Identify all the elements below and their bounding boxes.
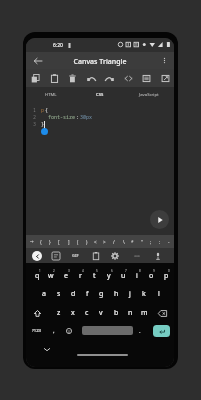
staticText: g bbox=[99, 289, 104, 299]
button[interactable]: v bbox=[94, 304, 108, 322]
button[interactable]: Emoji bbox=[63, 322, 75, 340]
button[interactable]: r bbox=[73, 267, 87, 285]
button[interactable]: u bbox=[116, 267, 130, 285]
button[interactable]: y bbox=[102, 267, 116, 285]
staticText: 8 bbox=[139, 269, 141, 273]
button[interactable]: b bbox=[109, 304, 123, 322]
staticText: a bbox=[42, 289, 46, 299]
button[interactable]: : bbox=[155, 235, 164, 248]
button[interactable]: Voice input bbox=[154, 252, 162, 260]
button[interactable]: CSS bbox=[75, 87, 124, 103]
button[interactable]: Clipboard bbox=[92, 252, 100, 260]
staticText: [ bbox=[58, 239, 60, 245]
button[interactable]: Space bbox=[82, 326, 133, 335]
staticText: k bbox=[142, 289, 146, 299]
button[interactable]: Backspace bbox=[155, 304, 169, 322]
staticText: q bbox=[35, 271, 40, 281]
staticText: font-size bbox=[48, 114, 76, 121]
button[interactable]: Hide keyboard bbox=[41, 343, 53, 355]
button[interactable]: Preview bbox=[137, 69, 155, 87]
staticText: { bbox=[45, 107, 49, 114]
button[interactable]: Keyboard settings bbox=[111, 252, 119, 260]
button[interactable]: \ bbox=[119, 235, 128, 248]
button[interactable]: " bbox=[137, 235, 146, 248]
button[interactable]: . bbox=[134, 322, 146, 340]
button[interactable]: n bbox=[123, 304, 137, 322]
button[interactable]: , bbox=[48, 322, 60, 340]
button[interactable]: Close toolbar bbox=[32, 251, 42, 261]
button[interactable]: Paste bbox=[45, 69, 63, 87]
button[interactable]: w bbox=[44, 267, 58, 285]
button[interactable]: i bbox=[130, 267, 144, 285]
button[interactable]: x bbox=[66, 304, 80, 322]
button[interactable]: Stickers bbox=[52, 252, 60, 260]
staticText: 3 bbox=[68, 269, 70, 273]
button[interactable]: More options bbox=[160, 56, 169, 65]
button[interactable]: More options bbox=[133, 252, 141, 260]
button[interactable]: HTML bbox=[26, 87, 75, 103]
button[interactable]: Enter bbox=[153, 325, 170, 337]
button[interactable]: ) bbox=[82, 235, 91, 248]
button[interactable]: k bbox=[137, 285, 151, 303]
staticText: < bbox=[94, 239, 97, 245]
button[interactable]: m bbox=[137, 304, 151, 322]
button[interactable]: g bbox=[94, 285, 108, 303]
staticText: Canvas Triangle bbox=[26, 57, 174, 67]
button[interactable]: Back bbox=[33, 56, 43, 66]
staticText: : bbox=[76, 114, 80, 121]
staticText: s bbox=[57, 289, 61, 299]
button[interactable]: q bbox=[30, 267, 44, 285]
button[interactable]: Undo bbox=[82, 69, 100, 87]
staticText: 1 bbox=[39, 269, 41, 273]
button[interactable]: o bbox=[144, 267, 158, 285]
staticText: 30px bbox=[80, 114, 93, 121]
button[interactable]: [ bbox=[54, 235, 63, 248]
button[interactable]: } bbox=[45, 235, 54, 248]
staticText: z bbox=[57, 308, 61, 318]
staticText: } bbox=[41, 121, 45, 128]
button[interactable]: JavaScript bbox=[124, 87, 173, 103]
button[interactable]: h bbox=[109, 285, 123, 303]
staticText: > bbox=[103, 239, 106, 245]
button[interactable]: → bbox=[27, 235, 36, 248]
staticText: CSS bbox=[96, 92, 104, 98]
button[interactable]: l bbox=[152, 285, 166, 303]
button[interactable]: - bbox=[164, 235, 173, 248]
staticText: w bbox=[48, 271, 54, 281]
button[interactable]: f bbox=[80, 285, 94, 303]
button[interactable]: > bbox=[100, 235, 109, 248]
button[interactable]: / bbox=[109, 235, 118, 248]
staticText: p bbox=[164, 271, 169, 281]
button[interactable]: GIF bbox=[72, 253, 79, 258]
staticText: 6 bbox=[111, 269, 113, 273]
button[interactable]: Open in browser bbox=[156, 69, 174, 87]
button[interactable]: p bbox=[159, 267, 173, 285]
button[interactable]: j bbox=[123, 285, 137, 303]
staticText: e bbox=[64, 271, 68, 281]
staticText: : bbox=[159, 239, 161, 245]
staticText: \ bbox=[123, 239, 125, 245]
button[interactable]: d bbox=[66, 285, 80, 303]
staticText: r bbox=[79, 271, 82, 281]
button[interactable]: ; bbox=[146, 235, 155, 248]
staticText: . bbox=[139, 327, 141, 335]
button[interactable]: * bbox=[128, 235, 137, 248]
button[interactable]: < bbox=[91, 235, 100, 248]
button[interactable]: e bbox=[59, 267, 73, 285]
button[interactable]: ] bbox=[64, 235, 73, 248]
button[interactable]: a bbox=[37, 285, 51, 303]
button[interactable]: t bbox=[87, 267, 101, 285]
button[interactable]: ( bbox=[73, 235, 82, 248]
button[interactable]: c bbox=[80, 304, 94, 322]
button[interactable]: ?123 bbox=[28, 322, 46, 340]
button[interactable]: { bbox=[36, 235, 45, 248]
staticText: o bbox=[149, 271, 154, 281]
button[interactable]: Shift bbox=[30, 304, 44, 322]
button[interactable]: Run bbox=[150, 210, 169, 229]
button[interactable]: Cut bbox=[63, 69, 81, 87]
button[interactable]: s bbox=[52, 285, 66, 303]
button[interactable]: Copy bbox=[26, 69, 44, 87]
button[interactable]: Code view bbox=[119, 69, 137, 87]
button[interactable]: z bbox=[52, 304, 66, 322]
button[interactable]: Redo bbox=[100, 69, 118, 87]
